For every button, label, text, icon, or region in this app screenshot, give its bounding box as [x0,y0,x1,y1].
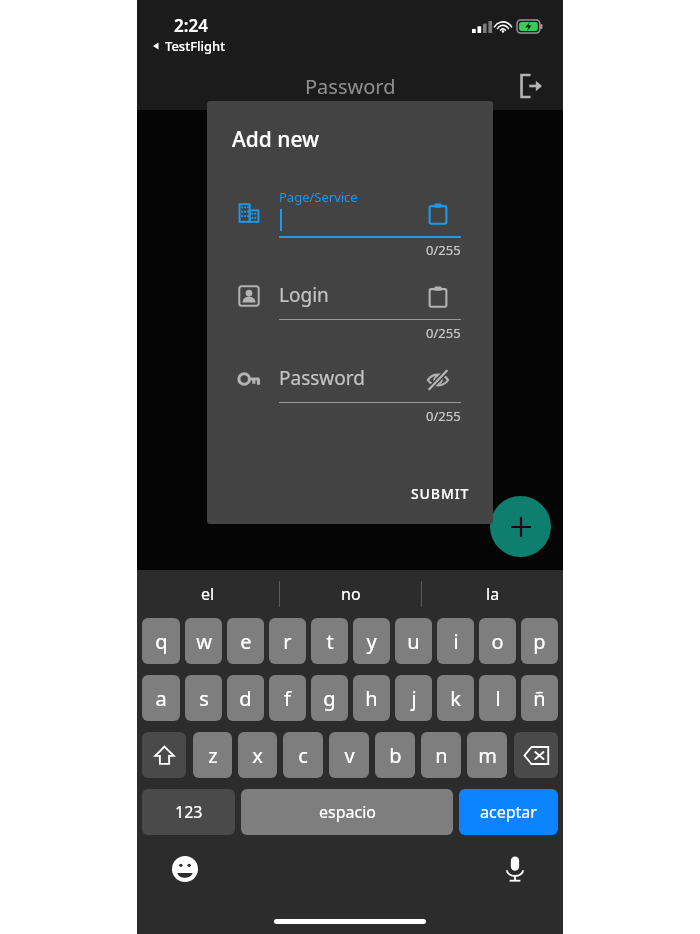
staticText: Login [279,282,329,308]
staticText: m [478,742,497,769]
button[interactable]: Emoji [167,851,203,887]
staticText: g [323,685,336,712]
button[interactable]: c [283,732,323,778]
button[interactable]: k [437,675,474,721]
staticText: b [389,742,402,769]
button[interactable]: h [353,675,390,721]
button[interactable]: d [227,675,264,721]
staticText: aceptar [480,801,537,823]
button[interactable]: aceptar [459,789,558,835]
button[interactable]: espacio [241,789,453,835]
button[interactable]: Paste page or service [421,197,455,231]
button[interactable]: z [193,732,232,778]
staticText: el [201,583,215,605]
staticText: no [341,583,361,605]
staticText: n [435,742,448,769]
button[interactable]: el [137,570,279,618]
staticText: w [196,628,212,655]
staticText: f [284,685,291,712]
staticText: e [240,628,252,655]
button[interactable]: p [521,618,558,664]
button[interactable]: SUBMIT [403,478,478,509]
button[interactable]: Paste login [421,280,455,314]
button[interactable]: ñ [521,675,558,721]
staticText: la [486,583,500,605]
button[interactable]: o [479,618,516,664]
button[interactable]: g [311,675,348,721]
button[interactable]: e [227,618,264,664]
staticText: x [252,742,263,769]
button[interactable]: b [375,732,415,778]
button[interactable]: f [269,675,306,721]
staticText: o [491,628,504,655]
staticText: u [407,628,420,655]
button[interactable]: x [238,732,277,778]
staticText: 123 [175,801,203,823]
button[interactable]: 123 [142,789,235,835]
staticText: l [495,685,501,712]
staticText: j [411,685,417,712]
staticText: 0/255 [426,407,461,425]
staticText: i [453,628,459,655]
button[interactable]: Log out [509,64,553,108]
staticText: ñ [533,685,546,712]
button[interactable]: j [395,675,432,721]
button[interactable]: i [437,618,474,664]
staticText: p [533,628,546,655]
staticText: h [365,685,378,712]
staticText: d [239,685,252,712]
button[interactable]: w [185,618,222,664]
staticText: q [155,628,168,655]
staticText: 0/255 [426,324,461,342]
staticText: Password [279,365,365,391]
staticText: t [326,628,334,655]
button[interactable]: s [185,675,222,721]
staticText: c [298,742,308,769]
button[interactable]: Shift [142,732,186,778]
button[interactable]: la [422,570,563,618]
button[interactable]: y [353,618,390,664]
button[interactable]: t [311,618,348,664]
button[interactable]: Dictation [497,851,533,887]
staticText: a [155,685,167,712]
staticText: espacio [319,801,376,823]
button[interactable]: no [280,570,421,618]
staticText: z [208,742,218,769]
button[interactable]: Show password [421,363,455,397]
button[interactable]: q [142,618,180,664]
staticText: s [199,685,209,712]
button[interactable]: Backspace [514,732,558,778]
button[interactable]: v [329,732,369,778]
staticText: TestFlight [165,37,226,55]
staticText: 0/255 [426,241,461,259]
staticText: v [344,742,355,769]
button[interactable]: u [395,618,432,664]
staticText: Password [305,73,396,100]
staticText: y [366,628,377,655]
staticText: k [450,685,461,712]
button[interactable]: m [467,732,507,778]
button[interactable]: n [421,732,461,778]
staticText: SUBMIT [411,484,470,503]
button[interactable]: r [269,618,306,664]
button[interactable]: l [479,675,516,721]
staticText: Page/Service [279,188,358,206]
staticText: 2:24 [174,14,208,37]
button[interactable]: Add [490,496,551,557]
staticText: Add new [232,125,320,154]
button[interactable]: a [142,675,180,721]
staticText: r [283,628,292,655]
